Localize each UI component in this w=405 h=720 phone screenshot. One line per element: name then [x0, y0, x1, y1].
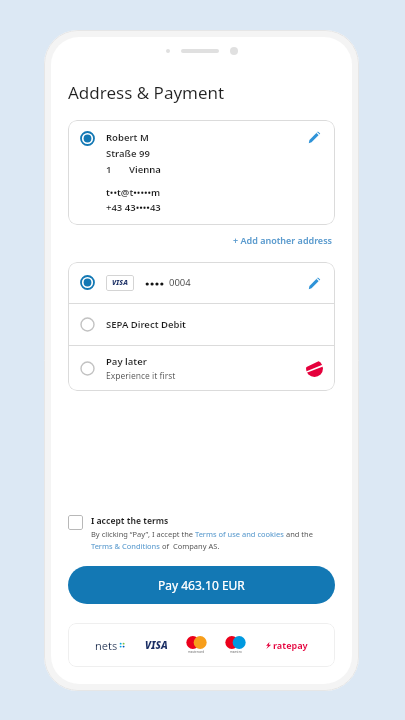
staticText: mastercard	[188, 650, 205, 654]
staticText: Experience it first	[106, 370, 176, 382]
staticText: SEPA Direct Debit	[106, 318, 186, 331]
button[interactable]: + Add another address	[231, 232, 335, 248]
button[interactable]: Accept the terms	[68, 515, 83, 530]
staticText: of Company AS.	[160, 541, 220, 551]
staticText: ratepay	[273, 639, 308, 651]
staticText: Pay later	[106, 355, 147, 368]
staticText: + Add another address	[233, 234, 333, 246]
staticText: nets	[95, 638, 118, 653]
staticText: Address & Payment	[68, 81, 225, 104]
button[interactable]: SEPA Direct Debit	[68, 304, 335, 345]
staticText: I accept the terms	[91, 515, 169, 527]
staticText: 1	[106, 163, 112, 176]
button[interactable]: Pay 463.10 EUR	[68, 566, 335, 604]
staticText: 0004	[169, 276, 191, 289]
staticText: Terms of use and cookies	[195, 529, 284, 539]
staticText: Pay 463.10 EUR	[158, 577, 245, 593]
button[interactable]: Terms of use and cookies	[195, 529, 284, 539]
button[interactable]: Pay later	[68, 346, 335, 391]
staticText: and the	[284, 529, 313, 539]
button[interactable]: Edit card	[305, 274, 323, 292]
staticText: VISA	[112, 278, 128, 288]
staticText: VISA	[145, 638, 168, 652]
staticText: Terms & Conditions	[91, 541, 160, 551]
staticText: Robert M	[106, 131, 149, 144]
button[interactable]: Robert M	[68, 120, 335, 225]
button[interactable]: Edit address	[305, 131, 323, 149]
button[interactable]: Terms & Conditions	[91, 541, 160, 551]
button[interactable]: VISA	[68, 262, 335, 303]
staticText: maestro	[230, 650, 242, 654]
staticText: +43 43••••43	[106, 201, 161, 214]
staticText: By clicking “Pay”, I accept the	[91, 529, 195, 539]
staticText: t••t@t•••••m	[106, 186, 161, 199]
staticText: Vienna	[129, 163, 161, 176]
staticText: Straße 99	[106, 147, 150, 160]
